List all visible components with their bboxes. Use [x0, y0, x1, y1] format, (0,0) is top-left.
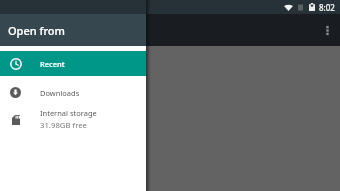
- staticText: Downloads: [40, 88, 80, 98]
- staticText: Open from: [8, 23, 66, 38]
- staticText: 31.98GB free: [40, 120, 87, 131]
- button[interactable]: Internal storage: [0, 106, 146, 133]
- staticText: Recent: [40, 59, 65, 69]
- button[interactable]: Downloads: [0, 79, 146, 106]
- button[interactable]: More options: [317, 20, 337, 40]
- staticText: Internal storage: [40, 108, 97, 118]
- button[interactable]: Recent: [0, 51, 146, 76]
- staticText: 8:02: [319, 2, 335, 13]
